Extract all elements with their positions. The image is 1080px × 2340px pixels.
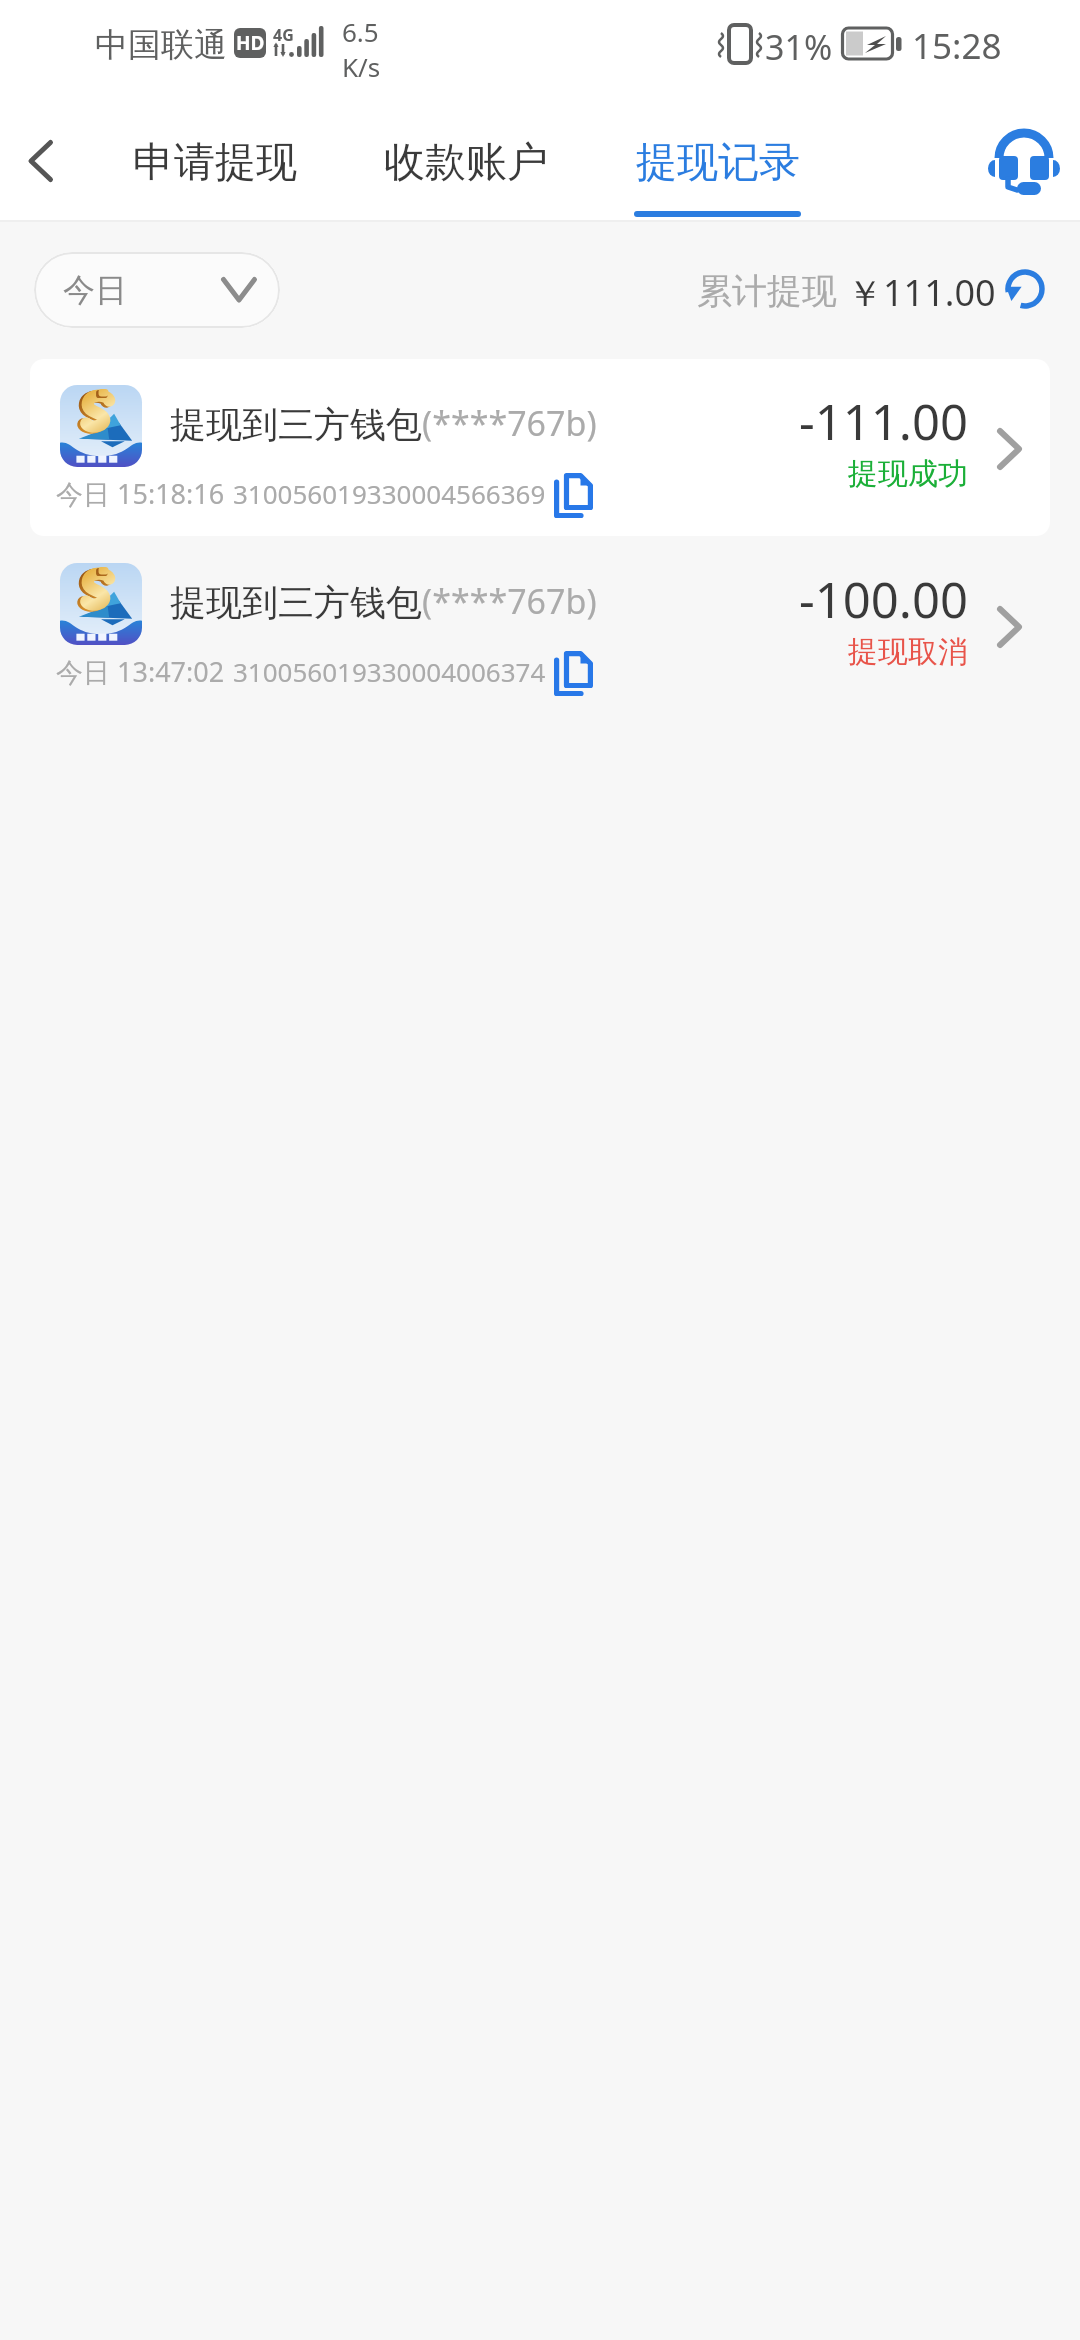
staticText: 6.5 <box>342 14 379 49</box>
staticText: 申请提现 <box>133 137 297 189</box>
staticText: 提现记录 <box>636 137 800 189</box>
staticText: 310056019330004566369 <box>233 476 546 511</box>
button[interactable]: 客服 <box>968 110 1080 222</box>
button[interactable]: 提现到三方钱包 <box>30 359 1050 536</box>
staticText: 累计提现 <box>697 269 837 313</box>
staticText: K/s <box>342 49 381 84</box>
staticText: 收款账户 <box>384 137 548 189</box>
staticText: HD <box>236 30 265 56</box>
button[interactable]: 复制 <box>544 465 604 527</box>
staticText: -111.00 <box>668 388 968 444</box>
staticText: 310056019330004006374 <box>233 654 546 689</box>
button[interactable]: 申请提现 <box>115 112 315 224</box>
staticText: 提现取消 <box>668 633 968 671</box>
staticText: 4G <box>273 24 294 46</box>
staticText: 提现到三方钱包 <box>170 402 422 447</box>
staticText: 中国联通 <box>95 24 227 66</box>
staticText: 今日 <box>63 270 127 310</box>
button[interactable]: 刷新 <box>999 263 1051 315</box>
staticText: (****767b) <box>422 578 597 624</box>
staticText: -100.00 <box>668 566 968 622</box>
staticText: 提现到三方钱包 <box>170 580 422 625</box>
button[interactable]: 复制 <box>544 643 604 705</box>
button[interactable]: 返回 <box>0 110 88 222</box>
button[interactable]: 提现到三方钱包 <box>30 537 1050 714</box>
staticText: 31% <box>765 24 833 70</box>
staticText: 15:28 <box>912 22 1002 70</box>
button[interactable]: 收款账户 <box>365 112 566 224</box>
button[interactable]: 提现记录 <box>614 112 821 224</box>
button[interactable]: 今日 <box>34 252 280 328</box>
staticText: ￥111.00 <box>847 268 996 317</box>
staticText: 提现成功 <box>668 455 968 493</box>
staticText: (****767b) <box>422 400 597 446</box>
staticText: 今日 13:47:02 <box>56 653 225 690</box>
staticText: 今日 15:18:16 <box>56 475 225 512</box>
